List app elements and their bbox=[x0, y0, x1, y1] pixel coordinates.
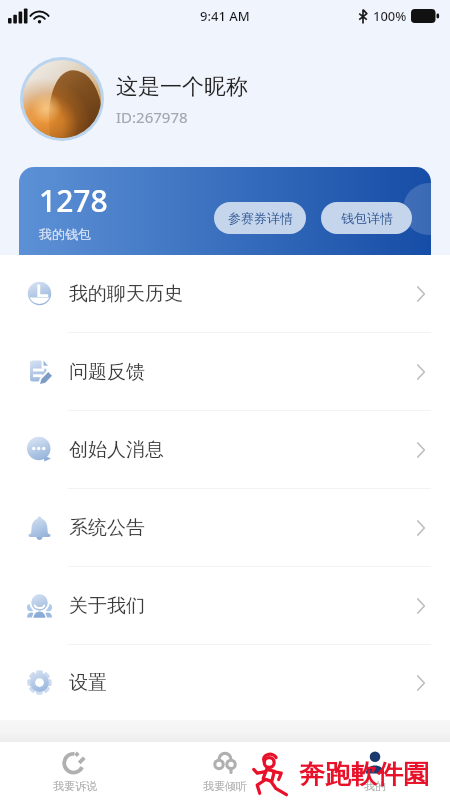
staticText: 我要倾听 bbox=[203, 779, 247, 793]
staticText: 系统公告 bbox=[69, 516, 145, 540]
staticText: 奔跑軟件園 bbox=[299, 758, 429, 791]
staticText: 创始人消息 bbox=[69, 438, 164, 462]
staticText: 这是一个昵称 bbox=[116, 73, 248, 101]
button[interactable]: 问题反馈 bbox=[0, 333, 450, 410]
staticText: 我要诉说 bbox=[53, 779, 97, 793]
button[interactable]: 设置 bbox=[0, 645, 450, 720]
button[interactable]: 我的 bbox=[300, 742, 450, 800]
button[interactable]: 我要倾听 bbox=[150, 742, 300, 800]
staticText: 问题反馈 bbox=[69, 360, 145, 384]
button[interactable]: 系统公告 bbox=[0, 489, 450, 566]
staticText: 我的钱包 bbox=[39, 226, 91, 242]
button[interactable]: 钱包详情 bbox=[321, 202, 412, 234]
staticText: 我的 bbox=[364, 779, 386, 793]
staticText: 参赛券详情 bbox=[228, 210, 293, 226]
button[interactable]: 关于我们 bbox=[0, 567, 450, 644]
staticText: 我的聊天历史 bbox=[69, 282, 183, 306]
button[interactable]: 参赛券详情 bbox=[214, 202, 306, 234]
staticText: 9:41 AM bbox=[200, 7, 250, 25]
staticText: ID:267978 bbox=[116, 107, 188, 127]
staticText: 1278 bbox=[39, 180, 108, 221]
button[interactable]: 我要诉说 bbox=[0, 742, 150, 800]
button[interactable]: 创始人消息 bbox=[0, 411, 450, 488]
staticText: 关于我们 bbox=[69, 594, 145, 618]
button[interactable]: 我的聊天历史 bbox=[0, 255, 450, 332]
staticText: 钱包详情 bbox=[341, 210, 393, 226]
staticText: 设置 bbox=[69, 671, 107, 695]
staticText: 100% bbox=[373, 7, 407, 25]
